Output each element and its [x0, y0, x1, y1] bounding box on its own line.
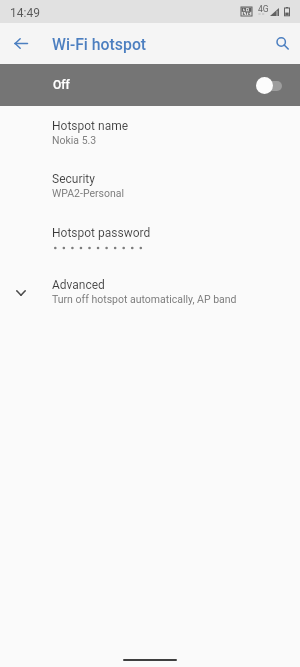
- staticText: WPA2-Personal: [52, 187, 125, 199]
- button[interactable]: Advanced: [0, 274, 300, 313]
- button[interactable]: Security: [0, 168, 300, 207]
- staticText: 4G: [258, 4, 269, 14]
- staticText: Advanced: [52, 278, 105, 292]
- button[interactable]: Back: [0, 23, 42, 64]
- button[interactable]: Search: [261, 23, 300, 64]
- staticText: Off: [53, 78, 70, 92]
- staticText: Wi-Fi hotspot: [52, 35, 147, 54]
- staticText: Hotspot password: [52, 226, 151, 240]
- staticText: Turn off hotspot automatically, AP band: [52, 293, 237, 305]
- staticText: Nokia 5.3: [52, 134, 97, 146]
- button[interactable]: Hotspot password: [0, 222, 300, 259]
- staticText: Hotspot name: [52, 119, 129, 133]
- button[interactable]: Off: [0, 64, 300, 106]
- staticText: Security: [52, 172, 95, 186]
- button[interactable]: Hotspot name: [0, 115, 300, 154]
- staticText: 14:49: [10, 6, 40, 20]
